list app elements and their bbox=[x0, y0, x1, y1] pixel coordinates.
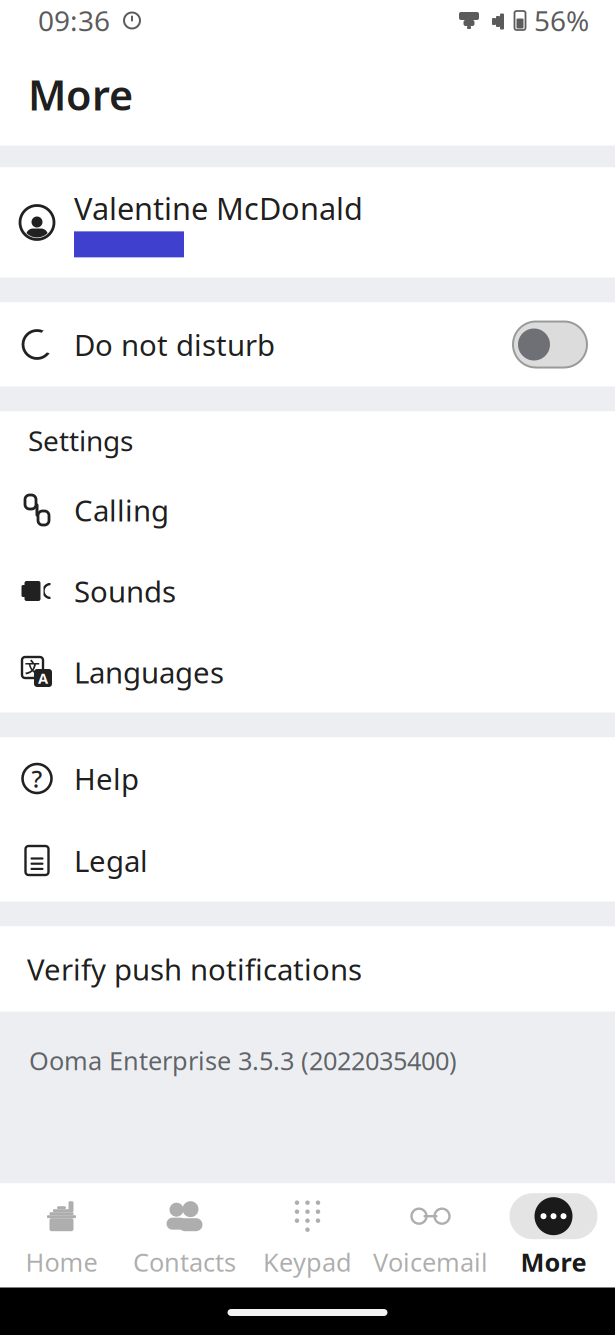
staticText: More bbox=[520, 1245, 586, 1279]
staticText: Legal bbox=[74, 841, 148, 880]
button[interactable]: Calling bbox=[0, 469, 615, 550]
staticText: A bbox=[38, 668, 48, 688]
button[interactable]: Do not disturb bbox=[0, 302, 615, 386]
button[interactable]: 文 bbox=[0, 631, 615, 712]
staticText: Valentine McDonald bbox=[74, 188, 363, 228]
staticText: 文 bbox=[25, 658, 40, 676]
staticText: Sounds bbox=[74, 571, 176, 610]
staticText: Keypad bbox=[263, 1245, 352, 1279]
staticText: Languages bbox=[74, 652, 224, 691]
button[interactable]: Contacts bbox=[123, 1185, 246, 1285]
staticText: 09:36 bbox=[38, 2, 110, 39]
button[interactable]: Valentine McDonald bbox=[0, 167, 615, 277]
staticText: Help bbox=[74, 759, 139, 798]
button[interactable]: Keypad bbox=[246, 1185, 369, 1285]
staticText: Settings bbox=[28, 422, 133, 459]
staticText: 56% bbox=[534, 2, 589, 39]
button[interactable]: Voicemail bbox=[369, 1185, 492, 1285]
staticText: Calling bbox=[74, 490, 169, 529]
staticText: Contacts bbox=[133, 1245, 236, 1279]
staticText: Ooma Enterprise 3.5.3 (2022035400) bbox=[29, 1043, 457, 1077]
button[interactable]: Legal bbox=[0, 819, 615, 901]
staticText: More bbox=[28, 67, 133, 122]
staticText: Verify push notifications bbox=[27, 949, 362, 988]
button[interactable]: Home bbox=[0, 1185, 123, 1285]
button[interactable]: ? bbox=[0, 737, 615, 819]
staticText: Home bbox=[25, 1245, 97, 1279]
button[interactable]: More bbox=[492, 1185, 615, 1285]
staticText: ? bbox=[31, 763, 42, 794]
button[interactable]: Sounds bbox=[0, 550, 615, 631]
staticText: Do not disturb bbox=[74, 325, 275, 364]
staticText: Voicemail bbox=[373, 1245, 488, 1279]
button[interactable]: Verify push notifications bbox=[0, 926, 615, 1011]
